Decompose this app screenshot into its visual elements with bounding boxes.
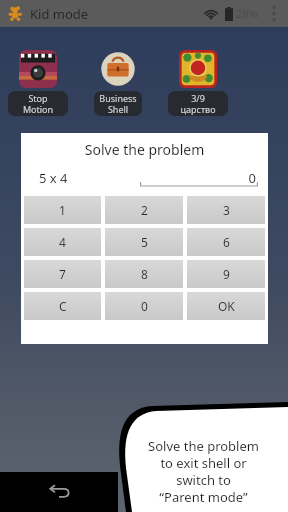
staticText: Kid mode <box>30 5 89 23</box>
staticText: Solve the problem to exit shell or switc… <box>148 437 259 506</box>
staticText: 5 <box>141 234 148 250</box>
button[interactable]: More options <box>268 4 280 24</box>
staticText: 1 <box>59 202 66 218</box>
button[interactable]: 6 <box>187 228 265 256</box>
staticText: C <box>59 298 67 314</box>
button[interactable]: Back <box>39 472 79 512</box>
staticText: 0 <box>141 298 148 314</box>
staticText: 3/9 царство <box>173 92 223 115</box>
button[interactable]: C <box>24 292 101 320</box>
button[interactable]: 3 <box>187 196 265 224</box>
button[interactable]: 1 <box>24 196 101 224</box>
button[interactable]: 7 <box>24 260 101 288</box>
staticText: 9 <box>223 266 230 282</box>
button[interactable]: 5 <box>105 228 183 256</box>
staticText: 6 <box>223 234 230 250</box>
staticText: 0 <box>140 169 256 187</box>
button[interactable]: OK <box>187 292 265 320</box>
button[interactable]: 0 <box>105 292 183 320</box>
button[interactable]: 9 <box>187 260 265 288</box>
staticText: 28% <box>236 6 258 21</box>
staticText: 2 <box>141 202 148 218</box>
button[interactable]: 4 <box>24 228 101 256</box>
staticText: Solve the problem <box>21 140 268 159</box>
staticText: 4 <box>59 234 66 250</box>
staticText: OK <box>218 298 235 314</box>
button[interactable]: 3/9 царство <box>168 50 228 116</box>
staticText: Business Shell <box>99 92 137 115</box>
button[interactable]: 8 <box>105 260 183 288</box>
button[interactable]: Business Shell <box>88 50 148 116</box>
staticText: 5 x 4 <box>39 169 68 187</box>
staticText: 7 <box>59 266 66 282</box>
staticText: 8 <box>141 266 148 282</box>
staticText: Stop Motion <box>13 92 63 115</box>
button[interactable]: Stop Motion <box>8 50 68 116</box>
staticText: 3 <box>223 202 230 218</box>
button[interactable]: 2 <box>105 196 183 224</box>
